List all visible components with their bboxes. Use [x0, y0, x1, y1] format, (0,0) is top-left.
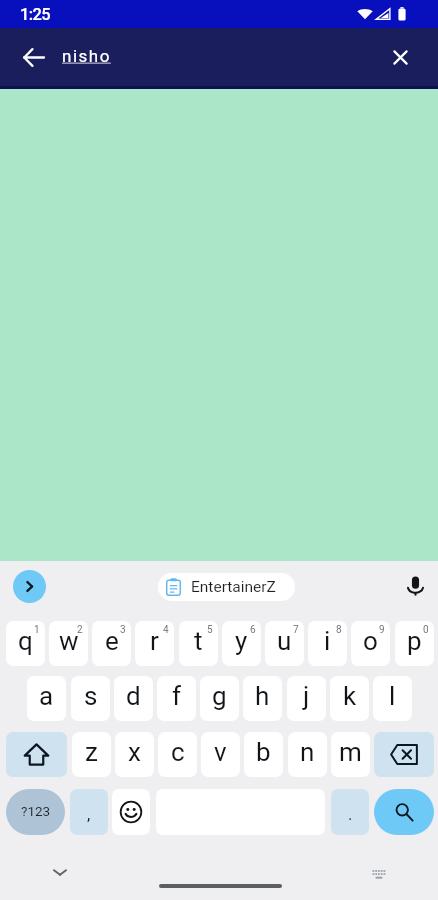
staticText: m [339, 737, 362, 767]
staticText: , [87, 804, 91, 824]
button[interactable]: m [331, 732, 370, 777]
button[interactable]: j [287, 676, 326, 721]
staticText: ?123 [21, 803, 51, 819]
button[interactable]: Hide keyboard [43, 855, 77, 889]
button[interactable]: g [200, 676, 239, 721]
button[interactable]: Clear search [379, 36, 421, 78]
button[interactable]: EntertainerZ [158, 573, 295, 601]
staticText: 1 [34, 624, 40, 636]
staticText: 4 [163, 624, 169, 636]
staticText: n [300, 737, 315, 767]
staticText: 7 [293, 624, 299, 636]
button[interactable]: z [72, 732, 111, 777]
button[interactable]: r [135, 621, 174, 666]
staticText: e [105, 626, 119, 656]
button[interactable]: p [395, 621, 434, 666]
button[interactable]: k [330, 676, 369, 721]
button[interactable]: ?123 [6, 789, 65, 835]
staticText: s [84, 681, 98, 711]
staticText: 8 [336, 624, 342, 636]
staticText: d [126, 681, 141, 711]
staticText: u [277, 626, 292, 656]
staticText: f [172, 681, 182, 711]
staticText: z [85, 737, 98, 767]
staticText: k [343, 681, 357, 711]
button[interactable]: x [115, 732, 154, 777]
button[interactable]: v [201, 732, 240, 777]
staticText: 6 [250, 624, 256, 636]
staticText: x [128, 737, 141, 767]
staticText: r [150, 626, 159, 656]
button[interactable]: s [71, 676, 110, 721]
staticText: w [59, 626, 79, 656]
button[interactable]: Shift [6, 732, 67, 777]
staticText: h [255, 681, 270, 711]
staticText: a [39, 681, 54, 711]
button[interactable]: f [157, 676, 196, 721]
staticText: 0 [423, 624, 429, 636]
staticText: j [303, 681, 310, 711]
button[interactable]: e [92, 621, 131, 666]
staticText: t [194, 626, 203, 656]
staticText: 3 [120, 624, 126, 636]
button[interactable]: Emoji [112, 789, 150, 835]
button[interactable]: Search [374, 789, 434, 835]
button[interactable]: n [288, 732, 327, 777]
button[interactable]: i [308, 621, 347, 666]
button[interactable]: q [6, 621, 45, 666]
staticText: o [363, 626, 378, 656]
staticText: p [407, 626, 422, 656]
button[interactable]: t [179, 621, 218, 666]
staticText: 1:25 [20, 5, 51, 24]
staticText: nisho [62, 46, 111, 66]
button[interactable]: l [373, 676, 412, 721]
staticText: g [212, 681, 227, 711]
staticText: 5 [207, 624, 213, 636]
button[interactable]: Backspace [374, 732, 434, 777]
staticText: i [324, 626, 331, 656]
staticText: 2 [77, 624, 83, 636]
staticText: b [256, 737, 271, 767]
staticText: q [18, 626, 33, 656]
staticText: v [214, 737, 227, 767]
button[interactable]: h [243, 676, 282, 721]
staticText: 9 [379, 624, 385, 636]
staticText: y [235, 626, 248, 656]
button[interactable]: d [114, 676, 153, 721]
button[interactable]: Back [12, 36, 54, 78]
staticText: c [171, 737, 185, 767]
staticText: EntertainerZ [191, 578, 276, 596]
button[interactable]: y [222, 621, 261, 666]
button[interactable]: a [27, 676, 66, 721]
button[interactable]: Voice input [399, 570, 431, 602]
button[interactable]: w [49, 621, 88, 666]
staticText: . [348, 804, 353, 824]
button[interactable]: . [331, 789, 369, 835]
button[interactable]: b [244, 732, 283, 777]
staticText: l [389, 681, 396, 711]
button[interactable]: c [158, 732, 197, 777]
button[interactable]: More suggestions [13, 570, 46, 603]
button[interactable]: Switch keyboard [366, 861, 392, 887]
button[interactable]: u [265, 621, 304, 666]
button[interactable]: , [70, 789, 108, 835]
button[interactable]: o [351, 621, 390, 666]
